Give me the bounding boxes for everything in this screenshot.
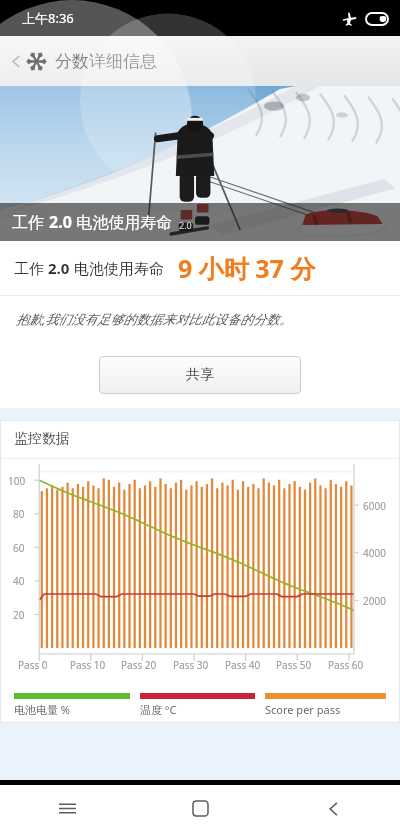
staticText: Pass 20 <box>121 658 157 672</box>
staticText: 40 <box>13 574 25 588</box>
staticText: 9 小时 37 分 <box>178 251 316 285</box>
button[interactable]: Home <box>134 785 267 832</box>
button[interactable]: 共享 <box>99 356 301 394</box>
staticText: 工作 <box>12 211 49 233</box>
staticText: 上午8:36 <box>22 9 74 27</box>
staticText: 温度 °C <box>140 702 177 717</box>
staticText: 4000 <box>363 546 386 560</box>
staticText: 工作 <box>14 258 48 278</box>
staticText: 分数详细信息 <box>55 51 157 72</box>
staticText: Score per pass <box>265 702 341 717</box>
staticText: Pass 30 <box>173 658 209 672</box>
staticText: 100 <box>8 474 26 488</box>
staticText: 2.0 <box>179 219 192 231</box>
staticText: 电池使用寿命 <box>72 211 173 233</box>
staticText: 抱歉,我们没有足够的数据来对比此设备的分数。 <box>16 310 293 328</box>
staticText: 监控数据 <box>14 430 70 448</box>
staticText: 20 <box>13 608 25 622</box>
staticText: Pass 50 <box>276 658 312 672</box>
staticText: 共享 <box>186 366 214 384</box>
staticText: 80 <box>13 507 25 521</box>
staticText: 2.0 <box>49 211 72 233</box>
staticText: 电池使用寿命 <box>70 258 164 278</box>
button[interactable]: Back <box>267 785 400 832</box>
button[interactable]: Back <box>6 47 161 76</box>
staticText: 60 <box>13 541 25 555</box>
staticText: Pass 10 <box>70 658 106 672</box>
staticText: 2.0 <box>48 258 70 278</box>
staticText: 2000 <box>363 594 386 608</box>
staticText: 6000 <box>363 499 386 513</box>
staticText: Pass 40 <box>225 658 261 672</box>
staticText: 电池电量 % <box>14 702 71 717</box>
staticText: Pass 0 <box>18 658 48 672</box>
staticText: Pass 60 <box>328 658 364 672</box>
button[interactable]: Recent apps <box>0 785 134 832</box>
